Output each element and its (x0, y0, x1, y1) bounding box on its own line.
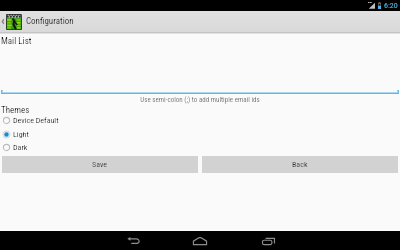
staticText: Back (292, 160, 308, 169)
button[interactable]: Dark (0, 141, 400, 154)
staticText: 6:20 (384, 1, 398, 10)
button[interactable]: Device Default (0, 114, 400, 127)
staticText: Device Default (13, 116, 59, 125)
button[interactable]: Recent apps (258, 231, 278, 250)
staticText: Mail List (1, 36, 32, 47)
button[interactable]: Mail list email addresses (0, 49, 400, 94)
staticText: Use semi-colon (;) to add multiple email… (0, 96, 400, 104)
staticText: Dark (13, 143, 28, 152)
button[interactable]: Navigate up: Configuration (0, 11, 400, 32)
button[interactable]: Back (123, 231, 143, 250)
staticText: Save (92, 160, 108, 169)
staticText: Configuration (26, 16, 74, 27)
staticText: Light (13, 130, 29, 139)
button[interactable]: Light (0, 128, 400, 141)
button[interactable]: Back (202, 156, 398, 173)
button[interactable]: Home (190, 231, 210, 250)
staticText: Themes (1, 105, 30, 116)
button[interactable]: Save (2, 156, 198, 173)
